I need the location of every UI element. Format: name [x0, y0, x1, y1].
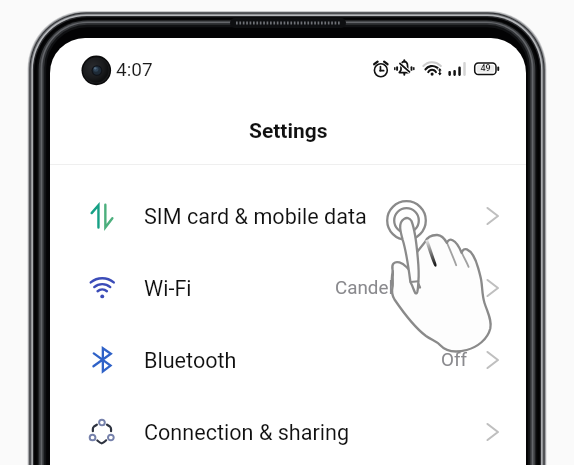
staticText: Off	[441, 349, 468, 371]
staticText: Wi-Fi	[144, 276, 192, 301]
button[interactable]: Connection & sharing	[50, 396, 526, 465]
staticText: 49	[480, 63, 491, 74]
staticText: SIM card & mobile data	[144, 204, 367, 229]
staticText: 4:07	[116, 58, 153, 80]
button[interactable]: SIM card & mobile data	[50, 180, 526, 252]
button[interactable]: Wi-Fi	[50, 252, 526, 324]
staticText: Bluetooth	[144, 348, 237, 373]
staticText: Connection & sharing	[144, 420, 350, 445]
staticText: Settings	[249, 119, 328, 144]
button[interactable]: Bluetooth	[50, 324, 526, 396]
staticText: Candelaria 2.4G	[335, 277, 468, 299]
